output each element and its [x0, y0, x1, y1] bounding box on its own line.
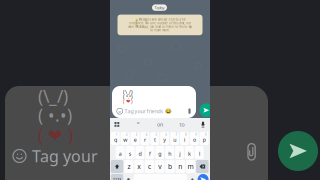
button[interactable]: Enter [198, 174, 209, 180]
button[interactable]: z [124, 160, 134, 173]
button[interactable]: Comma [124, 174, 132, 180]
button[interactable]: Period [188, 174, 196, 180]
button[interactable]: v [155, 160, 164, 173]
button[interactable]: 4 [140, 132, 149, 145]
staticText: p [203, 136, 206, 143]
staticText: v [158, 162, 161, 171]
button[interactable]: Emoji [115, 107, 124, 115]
staticText: t [154, 136, 156, 143]
button[interactable]: on [152, 118, 168, 131]
staticText: o [193, 136, 196, 143]
staticText: to [179, 121, 184, 128]
button[interactable]: a [116, 146, 125, 159]
staticText: 2 [126, 133, 128, 136]
button[interactable]: 5 [150, 132, 159, 145]
staticText: g [158, 150, 161, 157]
button[interactable]: “ [130, 118, 146, 131]
button[interactable]: Clipboard [110, 118, 124, 131]
button[interactable]: 2 [121, 132, 130, 145]
staticText: e [134, 136, 137, 143]
staticText: 🔒 Messages and calls are end-to-end encr… [128, 18, 192, 32]
staticText: ?123 [113, 177, 121, 180]
button[interactable]: Attach [186, 107, 193, 115]
staticText: h [168, 150, 171, 157]
staticText: u [173, 136, 176, 143]
button[interactable]: m [186, 160, 195, 173]
staticText: b [168, 162, 172, 171]
button[interactable]: 0 [200, 132, 209, 145]
button[interactable]: Delete [196, 160, 209, 173]
button[interactable]: s [126, 146, 134, 159]
button[interactable]: f [145, 146, 154, 159]
button[interactable]: 8 [180, 132, 189, 145]
button[interactable]: d [135, 146, 144, 159]
staticText: 0 [205, 133, 207, 136]
button[interactable]: Today [152, 4, 167, 11]
button[interactable]: h [165, 146, 174, 159]
staticText: 1 [116, 133, 118, 136]
button[interactable]: g [155, 146, 164, 159]
button[interactable]: 6 [160, 132, 169, 145]
staticText: 7 [175, 133, 177, 136]
staticText: c [148, 162, 151, 171]
staticText: 6 [165, 133, 167, 136]
staticText: z [127, 162, 130, 171]
staticText: l [199, 150, 200, 157]
button[interactable]: Voice input [196, 118, 210, 131]
button[interactable]: ?123 [111, 174, 123, 180]
staticText: r [144, 136, 146, 143]
staticText: 9 [195, 133, 197, 136]
button[interactable]: l [195, 146, 204, 159]
staticText: n [178, 162, 182, 171]
staticText: 5 [156, 133, 158, 136]
staticText: x [137, 162, 141, 171]
staticText: 4 [146, 133, 148, 136]
staticText: on [157, 121, 163, 128]
staticText: ( •.•) [123, 93, 133, 100]
staticText: d [139, 150, 142, 157]
staticText: i [184, 136, 185, 143]
staticText: f [149, 150, 151, 157]
staticText: s [129, 150, 132, 157]
button[interactable]: 3 [131, 132, 139, 145]
staticText: 3 [136, 133, 138, 136]
staticText: a [119, 150, 122, 157]
staticText: Tag your [32, 145, 98, 167]
button[interactable]: x [135, 160, 144, 173]
staticText: (\_/) [38, 84, 68, 107]
button[interactable]: 9 [190, 132, 199, 145]
button[interactable]: Send [199, 103, 213, 117]
button[interactable]: Shift [111, 160, 123, 173]
button[interactable]: 7 [170, 132, 179, 145]
staticText: Tag your friends 😂 [124, 108, 171, 115]
button[interactable]: 🔒 Messages and calls are end-to-end encr… [117, 15, 202, 35]
button[interactable]: k [185, 146, 194, 159]
staticText: ( ❤ ) [38, 123, 73, 146]
button[interactable]: j [175, 146, 184, 159]
staticText: k [188, 150, 191, 157]
button[interactable]: n [176, 160, 185, 173]
staticText: ( •.•) [38, 103, 72, 126]
button[interactable]: c [145, 160, 154, 173]
button[interactable]: 1 [111, 132, 120, 145]
staticText: ( ❤ ) [123, 98, 133, 105]
staticText: (\_/) [123, 88, 133, 95]
staticText: 8 [185, 133, 187, 136]
staticText: “ [137, 120, 139, 129]
staticText: m [187, 162, 193, 171]
staticText: y [163, 136, 166, 143]
staticText: w [123, 136, 127, 143]
staticText: q [114, 136, 117, 143]
button[interactable]: b [165, 160, 175, 173]
staticText: Today [154, 5, 164, 10]
staticText: j [179, 150, 180, 157]
button[interactable]: to [174, 118, 190, 131]
